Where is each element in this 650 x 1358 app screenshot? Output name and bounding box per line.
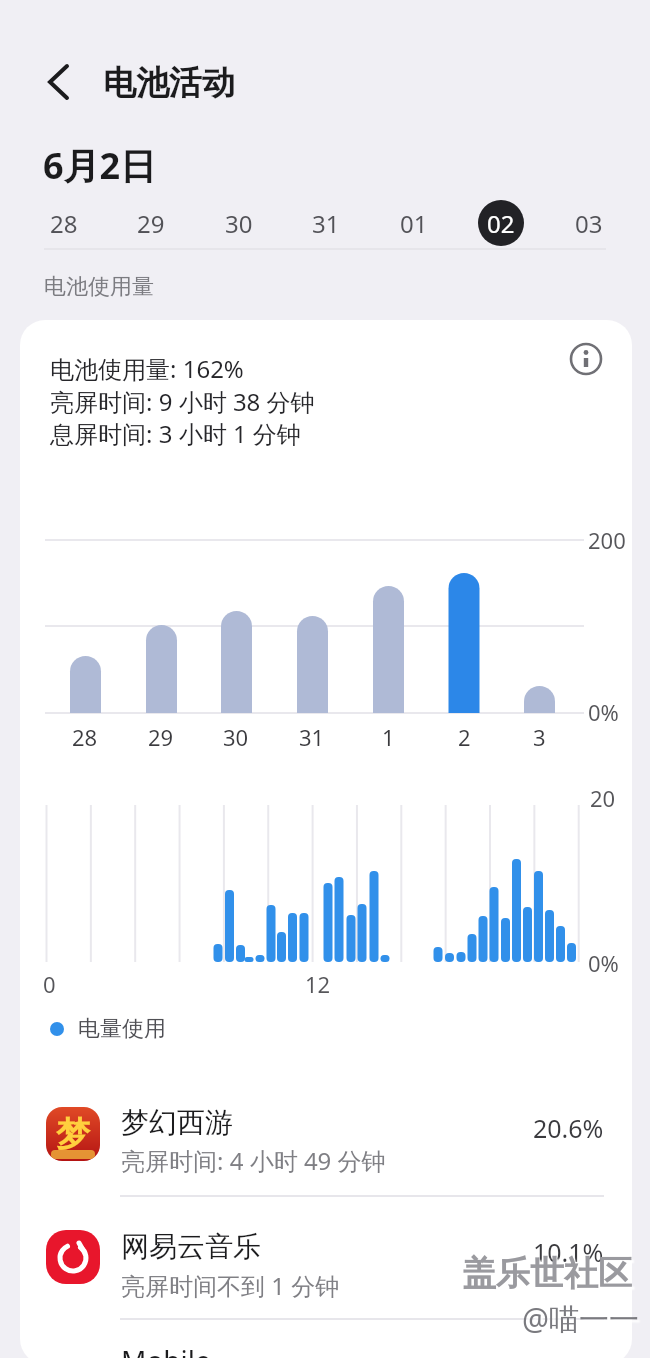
staticText: 10.1% bbox=[533, 1235, 604, 1269]
button[interactable] bbox=[564, 337, 608, 381]
staticText: 29 bbox=[137, 207, 165, 240]
staticText: 梦幻西游 bbox=[121, 1105, 233, 1140]
button[interactable]: 31 bbox=[298, 199, 354, 247]
staticText: 电池使用量: 162% bbox=[50, 352, 244, 385]
button[interactable]: 02 bbox=[473, 199, 529, 247]
staticText: 29 bbox=[148, 722, 174, 752]
staticText: 2 bbox=[458, 722, 471, 752]
button[interactable]: 30 bbox=[211, 199, 267, 247]
button[interactable] bbox=[36, 58, 84, 106]
button[interactable]: 03 bbox=[561, 199, 617, 247]
staticText: 6月2日 bbox=[43, 141, 157, 190]
staticText: 0 bbox=[43, 969, 56, 999]
staticText: 0% bbox=[588, 948, 619, 978]
button[interactable]: 29 bbox=[123, 199, 179, 247]
staticText: 02 bbox=[487, 207, 515, 240]
staticText: @喵一一 bbox=[522, 1298, 639, 1339]
staticText: 亮屏时间: 9 小时 38 分钟 bbox=[50, 385, 315, 418]
staticText: 20.6% bbox=[533, 1111, 604, 1145]
staticText: 30 bbox=[223, 722, 249, 752]
staticText: 01 bbox=[400, 207, 428, 240]
button[interactable] bbox=[20, 1218, 632, 1322]
staticText: 亮屏时间: 4 小时 49 分钟 bbox=[121, 1144, 386, 1177]
staticText: 03 bbox=[575, 207, 603, 240]
staticText: 网易云音乐 bbox=[121, 1229, 261, 1264]
staticText: 电池活动 bbox=[103, 62, 235, 104]
staticText: 12 bbox=[305, 969, 331, 999]
staticText: 电量使用 bbox=[78, 1015, 166, 1043]
staticText: 0% bbox=[588, 697, 619, 727]
staticText: 31 bbox=[299, 722, 325, 752]
button[interactable] bbox=[20, 1092, 632, 1196]
staticText: 200 bbox=[588, 525, 626, 555]
staticText: 3 bbox=[533, 722, 546, 752]
staticText: 30 bbox=[225, 207, 253, 240]
staticText: 盖乐世社区 bbox=[462, 1252, 632, 1295]
staticText: 31 bbox=[312, 207, 340, 240]
staticText: 息屏时间: 3 小时 1 分钟 bbox=[50, 417, 301, 450]
button[interactable]: 28 bbox=[36, 199, 92, 247]
staticText: 20 bbox=[590, 783, 616, 813]
staticText: 28 bbox=[72, 722, 98, 752]
staticText: 电池使用量 bbox=[44, 273, 154, 301]
staticText: Mobile bbox=[121, 1341, 211, 1358]
staticText: 梦 bbox=[56, 1113, 90, 1156]
button[interactable]: 01 bbox=[386, 199, 442, 247]
staticText: 28 bbox=[50, 207, 78, 240]
staticText: 1 bbox=[382, 722, 395, 752]
staticText: 亮屏时间不到 1 分钟 bbox=[121, 1269, 340, 1302]
